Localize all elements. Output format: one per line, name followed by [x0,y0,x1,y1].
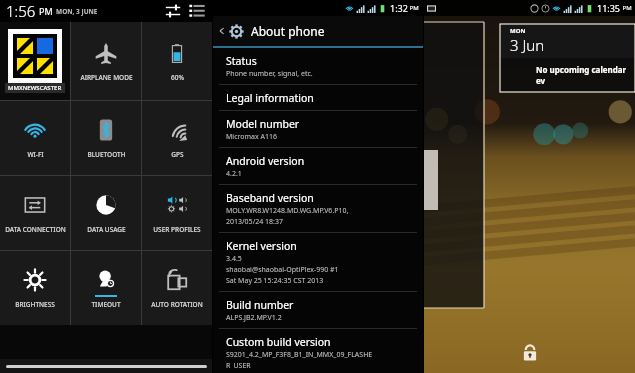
staticText: 1:56 [6,1,36,21]
staticText: Custom build version [226,335,331,349]
staticText: 60% [171,73,184,82]
button[interactable]: AUTO ROTATION [142,251,212,325]
button[interactable]: Baseband version [213,185,423,232]
button[interactable]: Back [213,16,423,46]
button[interactable]: Custom build version [213,329,423,373]
button[interactable]: Build number [213,292,423,328]
button[interactable]: GPS [142,101,212,175]
staticText: Micromax A116 [226,132,277,142]
staticText: USER PROFILES [153,225,201,234]
staticText: No upcoming calendar ev [536,64,635,86]
staticText: PM [39,5,53,17]
staticText: Sat May 25 15:24:35 CST 2013 [226,276,324,286]
staticText: Model number [226,117,300,131]
staticText: 11:35 [597,2,621,14]
staticText: DATA CONNECTION [5,225,66,234]
button[interactable]: BLUETOOTH [71,101,141,175]
staticText: Phone number, signal, etc. [226,69,313,79]
staticText: PM [621,4,632,12]
button[interactable]: MON [500,24,635,92]
staticText: AUTO ROTATION [151,300,203,309]
button[interactable]: Unlock [518,341,542,365]
button[interactable]: Settings sliders [164,2,182,20]
staticText: Kernel version [226,239,297,253]
staticText: TIMEOUT [91,300,121,309]
button[interactable]: MMXNEWSCASTER [0,22,70,100]
other: Back [218,27,226,35]
button[interactable]: Legal information [213,85,423,110]
staticText: ALPS.JB2.MP.V1.2 [226,313,282,323]
button[interactable]: 60% [142,22,212,100]
button[interactable]: AIRPLANE MODE [71,22,141,100]
staticText: WI-FI [27,150,44,159]
button[interactable]: Status [213,48,423,84]
button[interactable] [424,22,484,308]
staticText: 3 Jun [510,35,545,55]
staticText: R_USER [226,361,251,368]
button[interactable]: Notifications list [188,2,206,20]
button[interactable]: USER PROFILES [142,176,212,250]
staticText: AIRPLANE MODE [80,73,133,82]
button[interactable]: Model number [213,111,423,147]
staticText: Baseband version [226,191,314,205]
staticText: MOLY.WR8.W1248.MD.WG.MP.V6.P10, [226,206,349,216]
staticText: MON [510,27,526,35]
staticText: shaobai@shaobai-OptiPlex-990 #1 [226,265,339,275]
staticText: Build number [226,298,294,312]
staticText: Android version [226,154,305,168]
staticText: 1:32 [390,2,408,14]
button[interactable]: DATA CONNECTION [0,176,70,250]
staticText: S9201_4.2_MP_F3F8_B1_IN_MMX_09_FLASHE [226,350,373,360]
staticText: PM [408,4,419,12]
staticText: Status [226,54,257,68]
button[interactable]: BRIGHTNESS [0,251,70,325]
staticText: 4.2.1 [226,169,242,179]
button[interactable]: TIMEOUT [71,251,141,325]
staticText: BRIGHTNESS [15,300,55,309]
button[interactable]: DATA USAGE [71,176,141,250]
staticText: BLUETOOTH [87,150,126,159]
staticText: About phone [251,23,325,39]
staticText: 2013/05/24 18:37 [226,217,283,227]
button[interactable]: Android version [213,148,423,184]
button[interactable]: WI-FI [0,101,70,175]
staticText: DATA USAGE [87,225,126,234]
button[interactable]: Kernel version [213,233,423,291]
staticText: MON, 3 JUNE [56,7,98,16]
staticText: MMXNEWSCASTER [8,84,62,92]
staticText: 3.4.5 [226,254,242,264]
staticText: Legal information [226,91,314,105]
staticText: GPS [171,150,184,159]
